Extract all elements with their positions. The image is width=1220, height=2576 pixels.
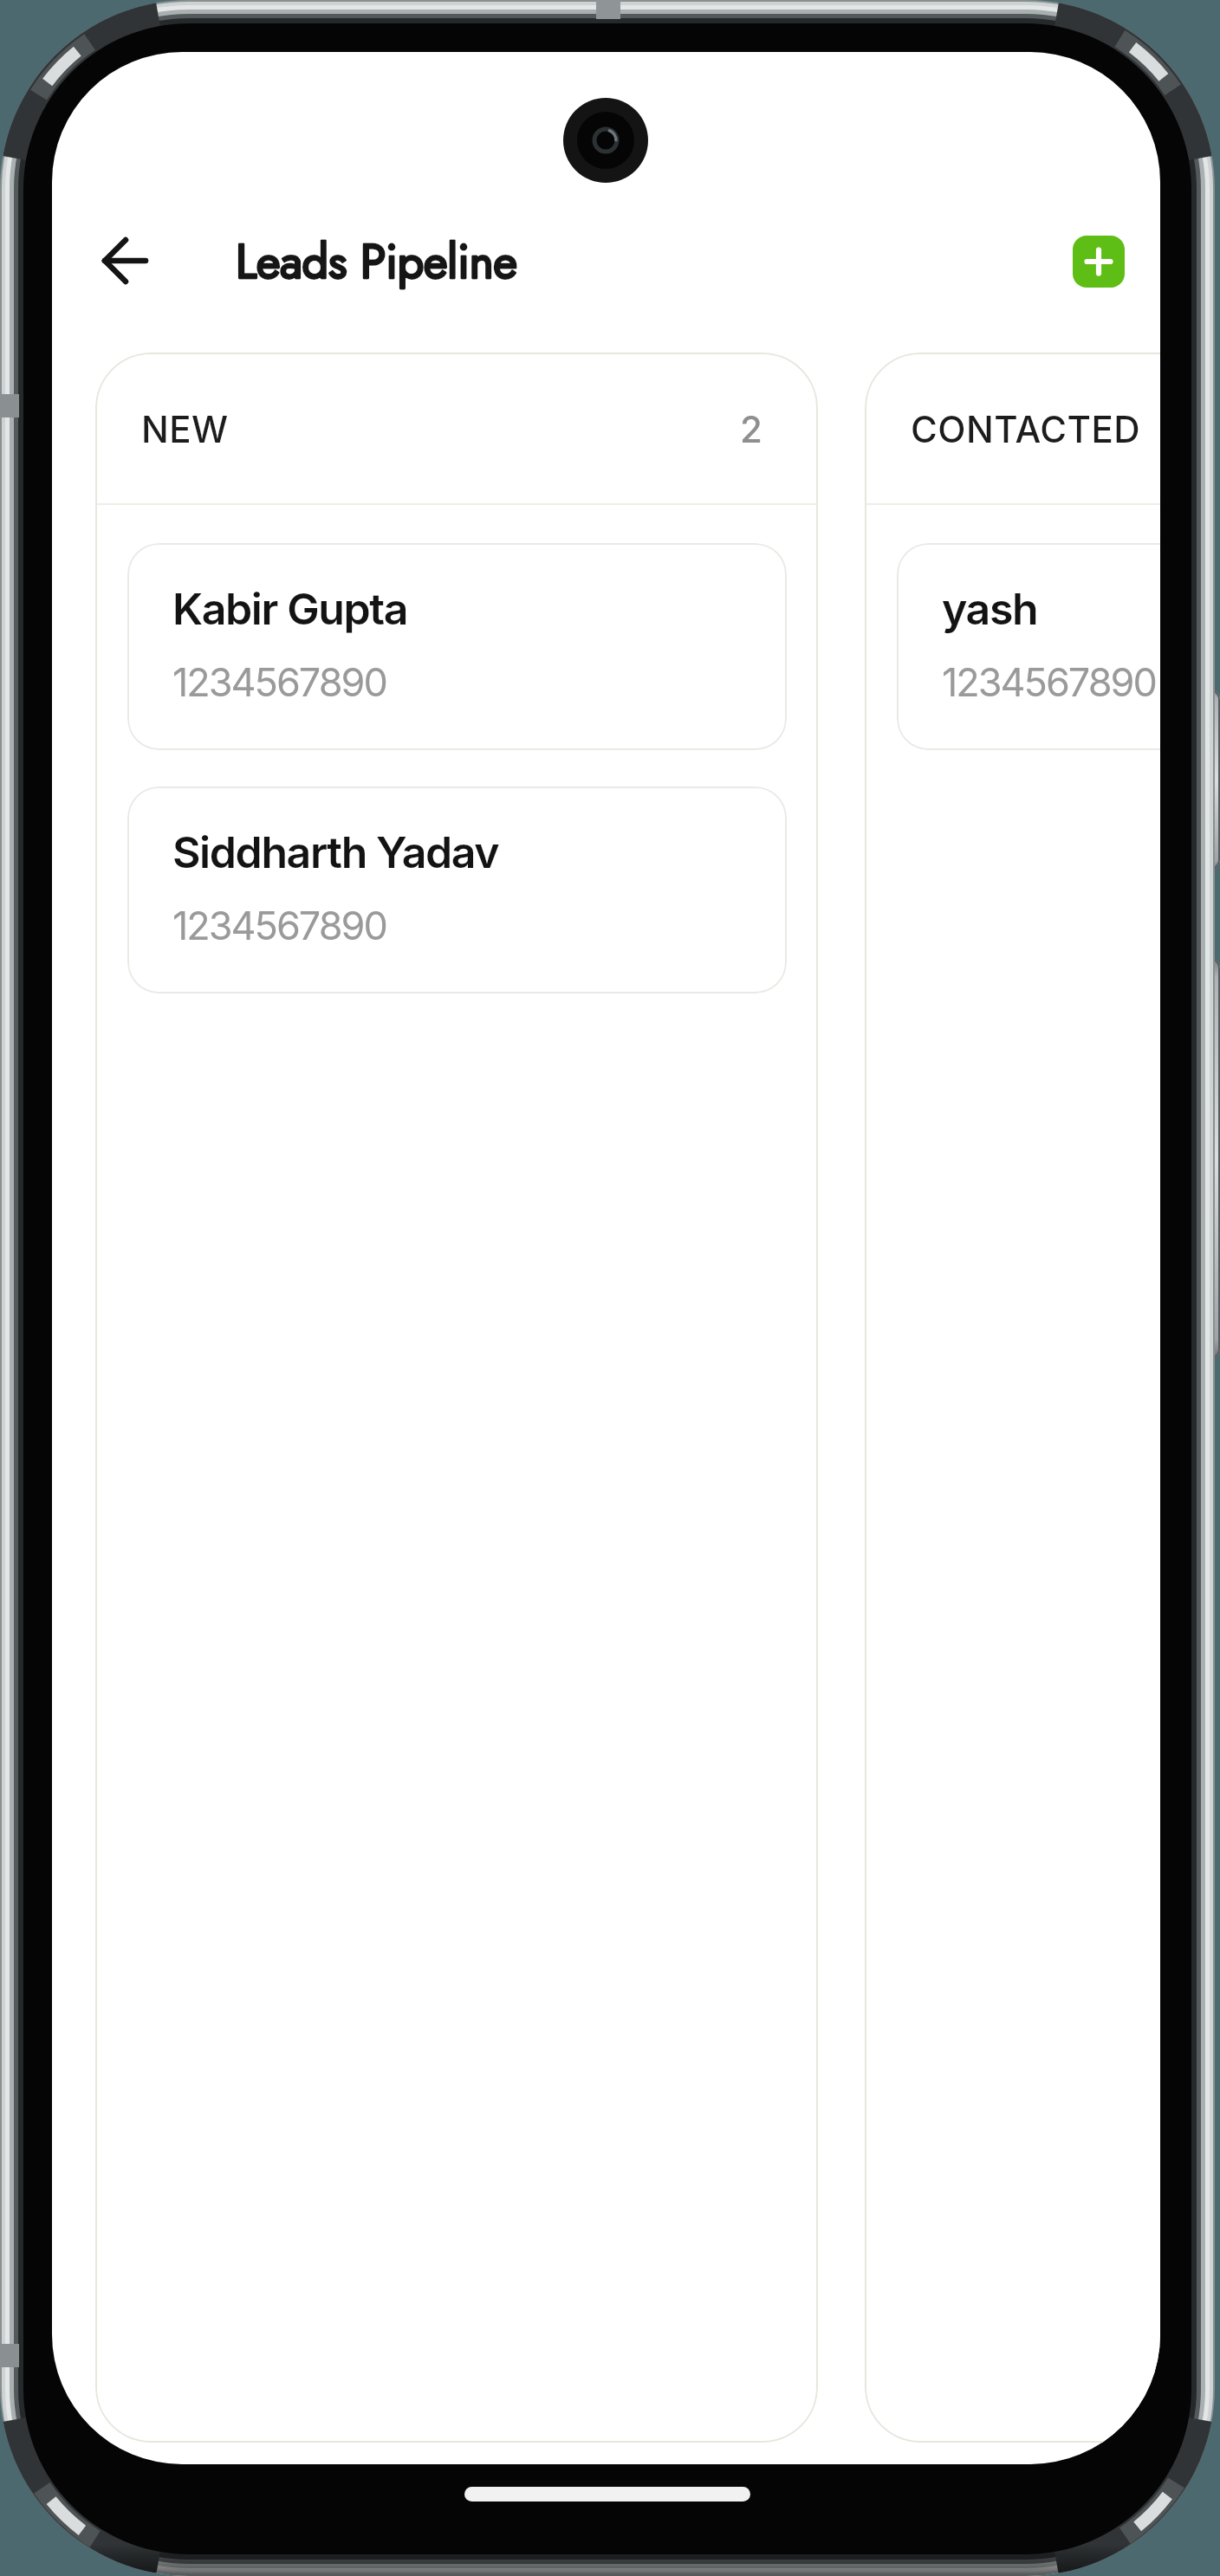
staticText: 1234567890 (942, 658, 1156, 705)
staticText: CONTACTED (911, 407, 1141, 451)
staticText: Siddharth Yadav (172, 826, 499, 878)
staticText: Leads Pipeline (236, 228, 517, 295)
staticText: yash (942, 583, 1038, 635)
staticText: Kabir Gupta (172, 583, 408, 635)
staticText: 2 (740, 407, 762, 451)
staticText: 1234567890 (172, 902, 386, 948)
staticText: Leads Pipeline (236, 228, 517, 295)
staticText: NEW (141, 407, 229, 451)
staticText: 1234567890 (172, 658, 386, 705)
